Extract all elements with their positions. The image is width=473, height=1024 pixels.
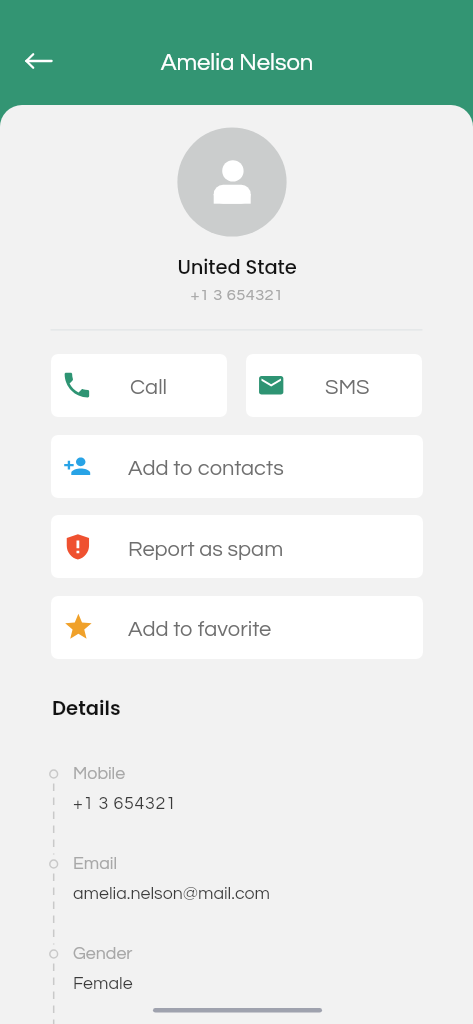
button[interactable]: [51, 354, 227, 417]
button[interactable]: Navigate back: [15, 37, 63, 85]
staticText: Add to contacts: [128, 457, 284, 480]
staticText: +1 3 654321: [37, 287, 437, 304]
staticText: United State: [37, 254, 437, 281]
staticText: amelia.nelson@mail.com: [73, 884, 271, 902]
staticText: Report as spam: [128, 538, 284, 561]
button[interactable]: [51, 596, 423, 659]
staticText: +1 3 654321: [73, 794, 177, 812]
button[interactable]: [246, 354, 422, 417]
staticText: Details: [52, 694, 121, 721]
button[interactable]: [51, 515, 423, 578]
staticText: Amelia Nelson: [37, 50, 437, 75]
staticText: Call: [130, 376, 168, 399]
staticText: SMS: [325, 376, 370, 399]
button[interactable]: [51, 435, 423, 498]
staticText: Mobile: [73, 764, 126, 782]
staticText: Female: [73, 974, 133, 992]
staticText: Add to favorite: [128, 618, 272, 641]
staticText: Gender: [73, 944, 133, 962]
staticText: Email: [73, 854, 118, 872]
